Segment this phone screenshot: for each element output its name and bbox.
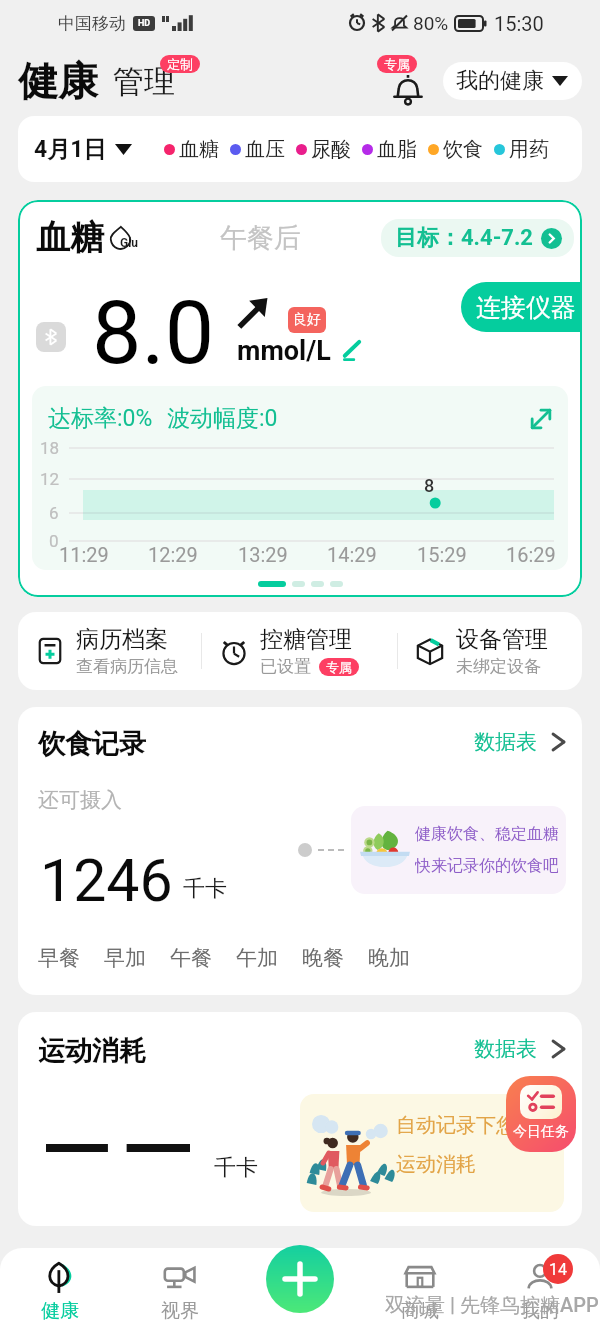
button[interactable]: Notifications xyxy=(377,53,439,109)
button[interactable]: 14 xyxy=(480,1248,600,1333)
staticText: 饮食 xyxy=(443,137,483,162)
staticText: 血糖 xyxy=(179,137,219,162)
other: Expand xyxy=(528,406,554,432)
staticText: 午加 xyxy=(236,945,278,971)
staticText: 18 xyxy=(40,438,60,458)
staticText: 尿酸 xyxy=(311,137,351,162)
button[interactable]: 控糖管理 xyxy=(202,612,397,690)
button[interactable]: 今日任务 xyxy=(506,1076,576,1152)
staticText: 16:29 xyxy=(506,543,556,566)
button[interactable]: 饮食 xyxy=(428,137,483,162)
staticText: 连接仪器 xyxy=(476,292,576,323)
button[interactable]: 数据表 xyxy=(466,721,582,763)
button[interactable]: 早餐 xyxy=(38,945,104,971)
staticText: 早加 xyxy=(104,945,146,971)
staticText: 未绑定设备 xyxy=(456,656,541,677)
staticText: 运动消耗 xyxy=(396,1152,476,1177)
button[interactable]: 视界 xyxy=(120,1248,240,1333)
staticText: 午餐 xyxy=(170,945,212,971)
staticText: 血压 xyxy=(245,137,285,162)
staticText: 快来记录你的饮食吧 xyxy=(415,856,558,876)
button[interactable]: 我的健康 xyxy=(443,62,582,100)
staticText: 15:30 xyxy=(494,12,544,35)
staticText: 还可摄入 xyxy=(38,787,122,813)
button[interactable]: 病历档案 xyxy=(18,612,201,690)
staticText: 达标率:0% xyxy=(48,404,153,433)
button[interactable]: 血脂 xyxy=(362,137,417,162)
staticText: 今日任务 xyxy=(513,1123,569,1141)
staticText: 8.0 xyxy=(92,281,215,384)
staticText: 千卡 xyxy=(183,875,227,903)
staticText: 0 xyxy=(49,531,59,551)
staticText: 1246 xyxy=(40,846,173,915)
staticText: 4月1日 xyxy=(34,135,107,164)
staticText: 专属 xyxy=(326,659,352,675)
staticText: 13:29 xyxy=(238,543,288,566)
staticText: 血糖 xyxy=(36,216,104,259)
staticText: 14:29 xyxy=(327,543,377,566)
button[interactable]: 数据表 xyxy=(466,1028,582,1070)
staticText: 健康饮食、稳定血糖, xyxy=(415,824,558,844)
staticText: 晚餐 xyxy=(302,945,344,971)
staticText: 查看病历信息 xyxy=(76,656,178,677)
staticText: 病历档案 xyxy=(76,625,168,654)
staticText: mmol/L xyxy=(237,335,331,367)
button[interactable]: 连接仪器 xyxy=(461,282,582,332)
button[interactable]: 尿酸 xyxy=(296,137,351,162)
staticText: 15:29 xyxy=(417,543,467,566)
staticText: Glu xyxy=(120,236,139,250)
staticText: 数据表 xyxy=(474,1036,537,1062)
staticText: 自动记录下您每天的 xyxy=(396,1113,564,1138)
staticText: 控糖管理 xyxy=(260,625,352,654)
button[interactable]: 商城 xyxy=(360,1248,480,1333)
staticText: 14 xyxy=(549,1260,567,1279)
staticText: 我的健康 xyxy=(456,67,544,95)
staticText: 用药 xyxy=(509,137,549,162)
button[interactable]: 设备管理 xyxy=(398,612,582,690)
button[interactable]: Add record xyxy=(266,1245,334,1313)
staticText: 双流量 | 先锋鸟控糖APP xyxy=(385,1293,599,1318)
staticText: 健康 xyxy=(18,56,98,106)
staticText: HD xyxy=(138,18,151,29)
staticText: 管理 xyxy=(113,62,175,101)
staticText: 健康 xyxy=(41,1299,79,1323)
staticText: 良好 xyxy=(293,311,321,329)
button[interactable]: 午餐 xyxy=(170,945,236,971)
staticText: 午餐后 xyxy=(220,221,301,255)
staticText: 12 xyxy=(40,469,60,489)
staticText: 已设置 xyxy=(260,656,311,677)
staticText: 专属 xyxy=(384,56,410,72)
button[interactable]: 血糖 xyxy=(164,137,219,162)
button[interactable]: 午加 xyxy=(236,945,302,971)
button[interactable]: 早加 xyxy=(104,945,170,971)
staticText: 6 xyxy=(49,503,59,523)
staticText: 血脂 xyxy=(377,137,417,162)
staticText: 晚加 xyxy=(368,945,410,971)
staticText: 视界 xyxy=(161,1299,199,1323)
button[interactable]: 晚餐 xyxy=(302,945,368,971)
staticText: 饮食记录 xyxy=(38,727,146,761)
staticText: 定制 xyxy=(167,56,193,72)
staticText: 设备管理 xyxy=(456,625,548,654)
button[interactable]: 目标：4.4-7.2 xyxy=(381,219,574,257)
staticText: 商城 xyxy=(401,1299,439,1323)
button[interactable]: 用药 xyxy=(494,137,549,162)
staticText: 早餐 xyxy=(38,945,80,971)
other: Edit xyxy=(340,339,364,363)
staticText: 我的 xyxy=(521,1299,559,1323)
button[interactable]: 健康 xyxy=(0,1248,120,1333)
button[interactable]: 晚加 xyxy=(368,945,434,971)
staticText: 中国移动 xyxy=(58,13,126,34)
staticText: 运动消耗 xyxy=(38,1034,146,1068)
staticText: 80% xyxy=(413,12,449,34)
staticText: 波动幅度:0 xyxy=(167,404,278,433)
staticText: 8 xyxy=(424,475,435,496)
button[interactable]: 4月1日 xyxy=(34,135,132,164)
staticText: 数据表 xyxy=(474,729,537,755)
staticText: 11:29 xyxy=(59,543,109,566)
button[interactable]: 血压 xyxy=(230,137,285,162)
staticText: 12:29 xyxy=(148,543,198,566)
staticText: 千卡 xyxy=(214,1154,258,1182)
staticText: 目标：4.4-7.2 xyxy=(395,224,533,252)
